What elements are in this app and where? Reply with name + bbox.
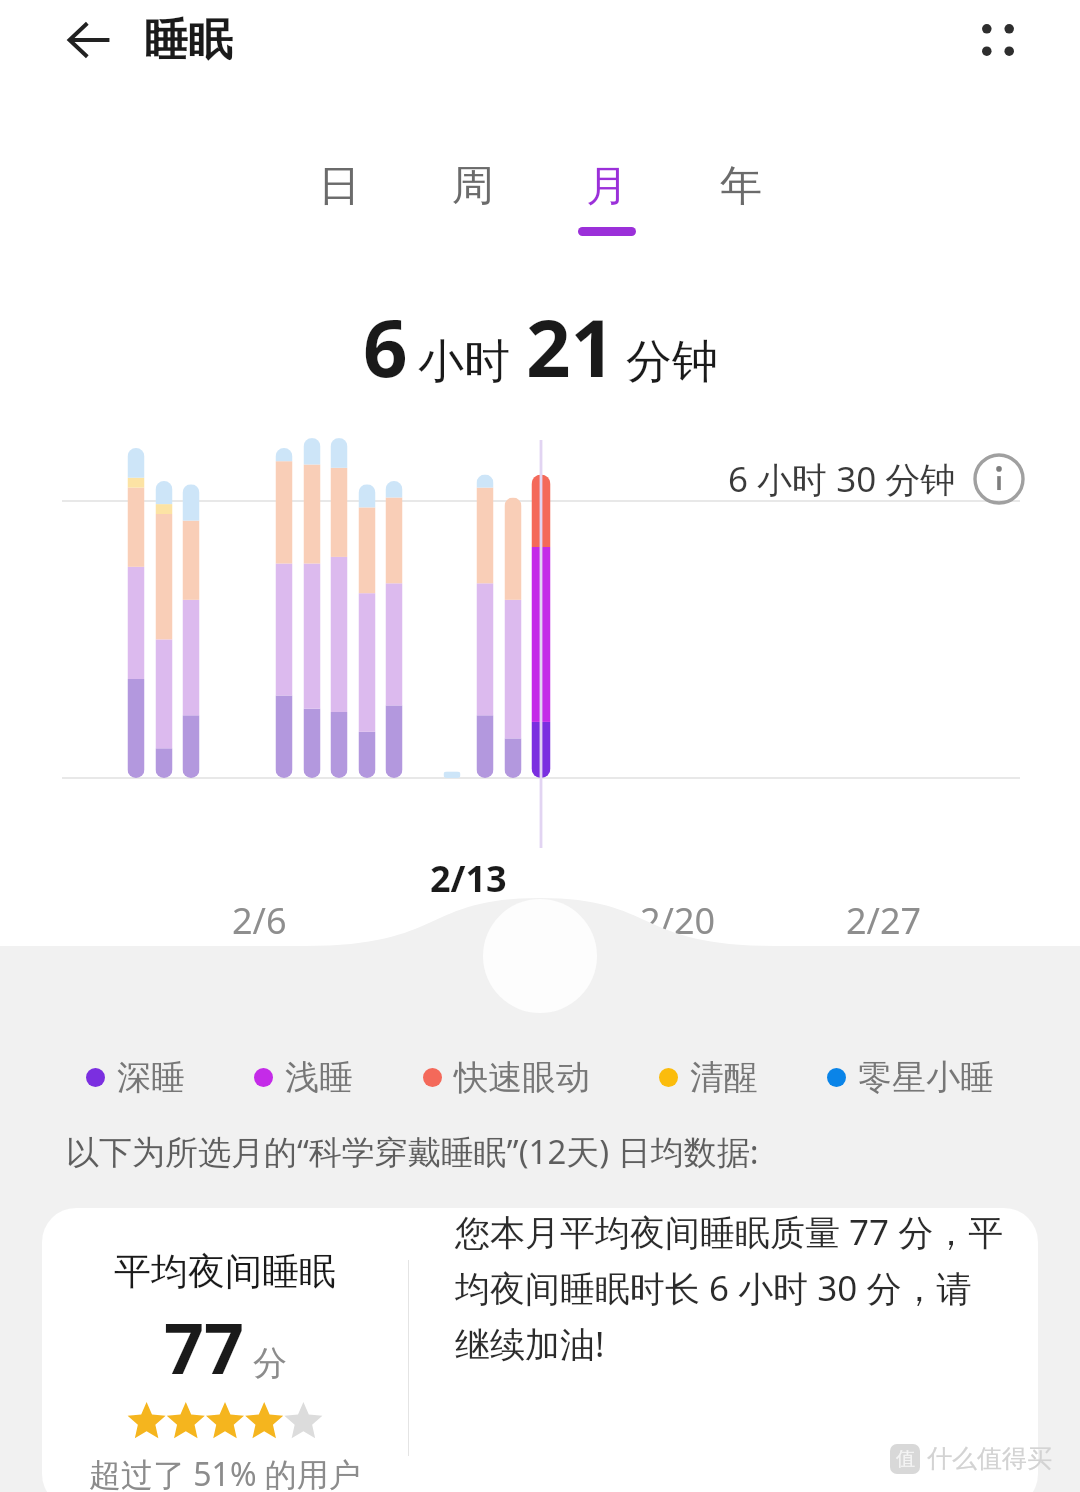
staticText: 超过了 51% 的用户 — [89, 1452, 361, 1492]
staticText: 小时 — [418, 333, 510, 391]
button[interactable]: 周 — [406, 160, 540, 227]
staticText: 6 — [363, 294, 408, 400]
staticText: 快速眼动 — [454, 1056, 590, 1099]
staticText: 零星小睡 — [858, 1056, 994, 1099]
staticText: 周 — [452, 160, 494, 213]
button[interactable]: More options — [952, 0, 1044, 80]
staticText: 深睡 — [117, 1056, 185, 1099]
staticText: 2/6 — [232, 896, 287, 945]
staticText: 月 — [586, 160, 628, 213]
staticText: 2/27 — [846, 896, 922, 945]
button[interactable]: 浅睡 — [254, 1056, 353, 1099]
button[interactable]: 月 — [540, 160, 674, 236]
button[interactable]: 年 — [674, 160, 808, 227]
button[interactable]: Info — [972, 452, 1026, 506]
staticText: 日 — [318, 160, 360, 213]
staticText: 分钟 — [626, 333, 718, 391]
staticText: 分 — [253, 1342, 287, 1385]
staticText: 什么值得买 — [927, 1443, 1052, 1474]
staticText: 浅睡 — [285, 1056, 353, 1099]
button[interactable]: 零星小睡 — [827, 1056, 994, 1099]
button[interactable]: Back — [44, 0, 136, 80]
staticText: 值 — [896, 1447, 915, 1471]
button[interactable]: 日 — [272, 160, 406, 227]
staticText: 年 — [720, 160, 762, 213]
button[interactable]: 清醒 — [659, 1056, 758, 1099]
staticText: 2/20 — [640, 896, 716, 945]
button[interactable]: 平均夜间睡眠 — [42, 1208, 1038, 1492]
staticText: 您本月平均夜间睡眠质量 77 分，平均夜间睡眠时长 6 小时 30 分，请继续加… — [455, 1208, 1006, 1368]
button[interactable]: 快速眼动 — [423, 1056, 590, 1099]
button[interactable]: 深睡 — [86, 1056, 185, 1099]
staticText: 睡眠 — [144, 13, 232, 68]
staticText: 以下为所选月的“科学穿戴睡眠”(12天) 日均数据: — [66, 1129, 759, 1174]
staticText: 2/13 — [430, 854, 507, 903]
staticText: 6 小时 30 分钟 — [728, 455, 956, 503]
staticText: 清醒 — [690, 1056, 758, 1099]
staticText: 77 — [164, 1299, 245, 1394]
staticText: 平均夜间睡眠 — [114, 1248, 336, 1295]
staticText: 21 — [526, 294, 616, 400]
